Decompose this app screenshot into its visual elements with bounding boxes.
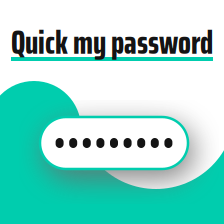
button[interactable]: Password [40,117,188,169]
staticText: Quick my password [11,16,213,68]
